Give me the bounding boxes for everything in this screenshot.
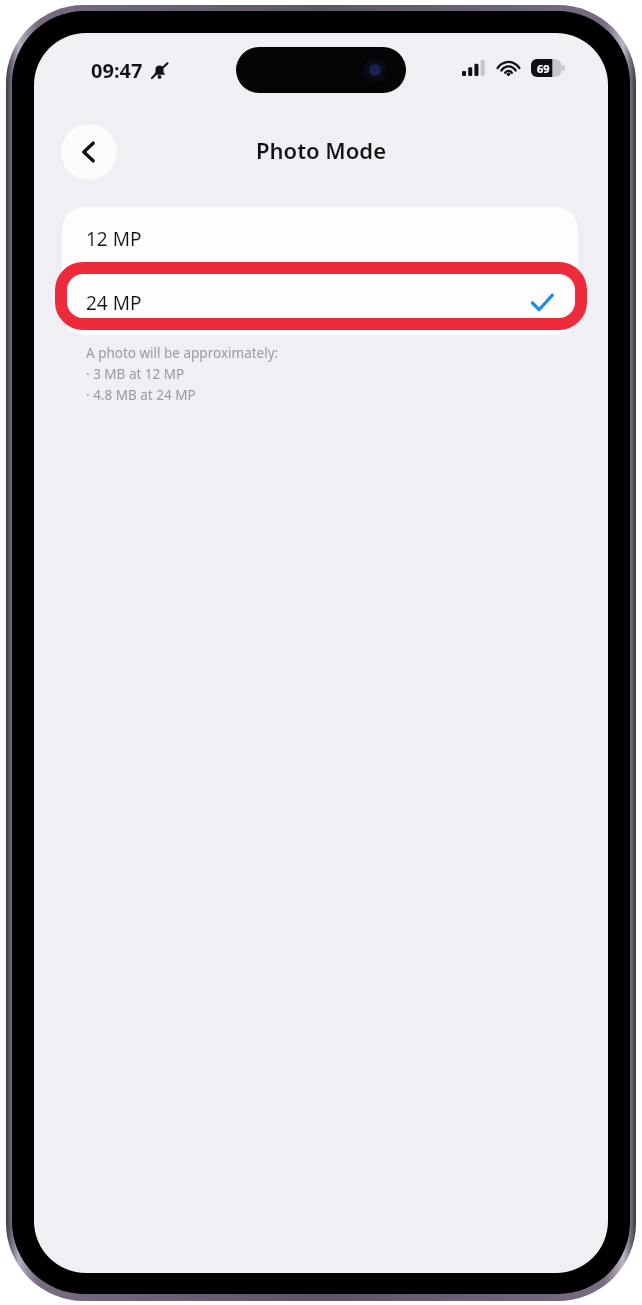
staticText: 24 MP [86,290,142,316]
staticText: 12 MP [86,226,142,252]
staticText: · 3 MB at 12 MP [86,365,185,383]
staticText: A photo will be approximately: [86,344,279,362]
staticText: 09:47 [91,57,143,84]
button[interactable]: Back [61,124,117,180]
staticText: Photo Mode [34,135,608,165]
staticText: · 4.8 MB at 24 MP [86,386,196,404]
button[interactable]: 24 MP [62,271,578,335]
button[interactable]: 12 MP [62,207,578,271]
staticText: 69 [537,61,550,76]
